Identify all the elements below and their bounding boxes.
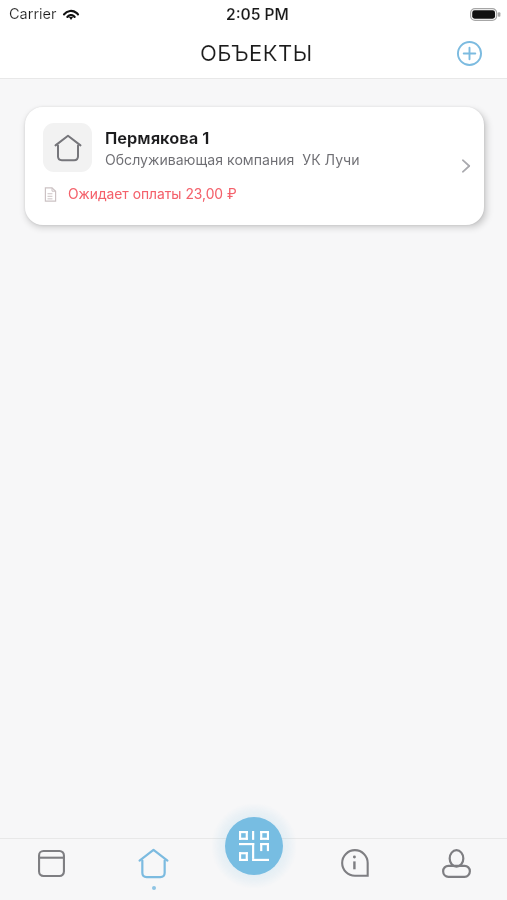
button[interactable]: Add object [452, 36, 486, 70]
staticText: Carrier [9, 5, 57, 23]
button[interactable]: Cards [0, 839, 102, 900]
staticText: 2:05 PM [226, 5, 289, 24]
button[interactable]: Info [305, 839, 406, 900]
button[interactable]: Home [102, 839, 204, 900]
staticText: Обслуживающая компания УК Лучи [105, 151, 360, 168]
button[interactable]: Profile [406, 839, 507, 900]
button[interactable]: Scan QR code [225, 817, 283, 875]
staticText: ОБЪЕКТЫ [200, 40, 313, 67]
button[interactable]: Пермякова 1 [25, 107, 484, 225]
staticText: Пермякова 1 [105, 128, 210, 148]
staticText: Ожидает оплаты 23,00 ₽ [68, 186, 237, 203]
